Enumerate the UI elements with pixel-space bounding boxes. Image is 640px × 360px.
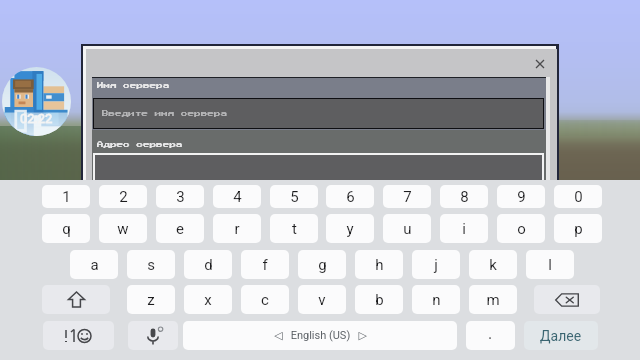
staticText: x [204,291,212,309]
staticText: 5 [290,188,299,206]
button[interactable]: e [156,214,204,243]
staticText: o [517,220,526,238]
button[interactable]: y [326,214,374,243]
button[interactable]: v [298,285,346,314]
button[interactable]: . [466,321,515,350]
button[interactable]: 4 [213,185,261,208]
button[interactable]: Close dialog [528,52,552,76]
button[interactable]: ◁ English (US) ▷ [183,321,457,350]
button[interactable]: 0 [554,185,602,208]
button[interactable]: Backspace [534,285,600,314]
staticText: d [204,256,213,274]
button[interactable]: c [241,285,289,314]
staticText: Имя сервера [97,82,170,89]
button[interactable]: m [469,285,517,314]
staticText: 8 [460,188,469,206]
staticText: 0 [574,188,583,206]
button[interactable]: Symbols and emoji [43,321,114,350]
button[interactable]: d [184,250,232,279]
staticText: j [434,256,438,274]
staticText: Адрес сервера [97,141,183,148]
button[interactable]: i [440,214,488,243]
staticText: q [62,220,71,238]
button[interactable]: q [42,214,90,243]
button[interactable]: 9 [497,185,545,208]
staticText: 2 [119,188,128,206]
staticText: g [318,256,327,274]
staticText: v [318,291,326,309]
staticText: s [147,256,155,274]
button[interactable]: Voice input [128,321,178,350]
staticText: Далее [540,328,582,344]
staticText: u [403,220,412,238]
staticText: 4 [233,188,242,206]
staticText: 02:22 [20,111,53,126]
button[interactable]: 5 [270,185,318,208]
staticText: r [234,220,240,238]
staticText: f [262,256,268,274]
staticText: t [292,220,297,238]
staticText: a [90,256,99,274]
button[interactable]: u [383,214,431,243]
button[interactable]: 2 [99,185,147,208]
staticText: b [375,291,384,309]
button[interactable]: 7 [383,185,431,208]
staticText: w [117,220,129,238]
staticText: h [375,256,384,274]
staticText: m [486,291,500,309]
button[interactable]: z [127,285,175,314]
button[interactable]: 6 [326,185,374,208]
button[interactable]: p [554,214,602,243]
staticText: 6 [346,188,355,206]
staticText: y [346,220,354,238]
staticText: 1 [62,188,71,206]
staticText: 9 [517,188,526,206]
staticText: 3 [176,188,185,206]
staticText: Введите имя сервера [102,110,228,117]
button[interactable]: t [270,214,318,243]
button[interactable]: n [412,285,460,314]
button[interactable]: g [298,250,346,279]
button[interactable]: 1 [42,185,90,208]
button[interactable]: Далее [524,321,598,350]
button[interactable]: k [469,250,517,279]
staticText: n [432,291,441,309]
button[interactable]: l [526,250,574,279]
button[interactable]: s [127,250,175,279]
staticText: 7 [403,188,412,206]
staticText: i [462,220,466,238]
button[interactable]: r [213,214,261,243]
button[interactable]: b [355,285,403,314]
button[interactable]: h [355,250,403,279]
staticText: c [261,291,269,309]
button[interactable]: Shift [42,285,110,314]
staticText: ◁ English (US) ▷ [274,329,367,342]
staticText: z [147,291,155,309]
staticText: e [176,220,184,238]
button[interactable]: f [241,250,289,279]
button[interactable]: o [497,214,545,243]
button[interactable]: a [70,250,118,279]
button[interactable]: x [184,285,232,314]
staticText: p [574,220,583,238]
staticText: . [488,324,493,343]
button[interactable]: 3 [156,185,204,208]
staticText: k [489,256,497,274]
staticText: l [548,256,552,274]
button[interactable]: w [99,214,147,243]
button[interactable]: 8 [440,185,488,208]
button[interactable]: j [412,250,460,279]
